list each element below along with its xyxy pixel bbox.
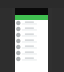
button[interactable] <box>15 20 48 26</box>
button[interactable] <box>15 56 48 62</box>
button[interactable] <box>15 38 48 44</box>
button[interactable] <box>15 26 48 32</box>
button[interactable] <box>15 44 48 50</box>
button[interactable] <box>15 32 48 38</box>
button[interactable] <box>15 50 48 56</box>
